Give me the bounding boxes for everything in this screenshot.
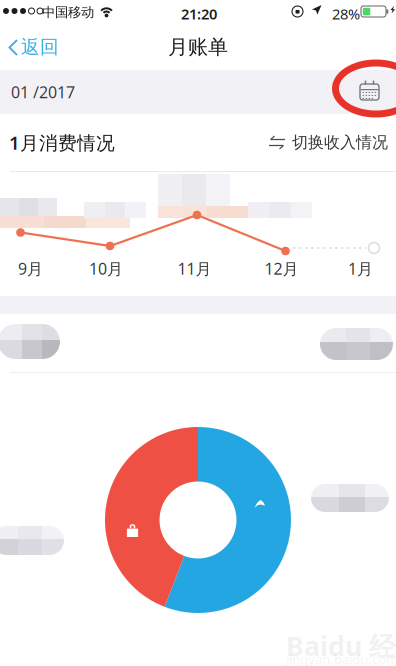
staticText: 01 /2017 [11, 81, 75, 103]
button[interactable]: 返回 [0, 28, 69, 66]
staticText: 中国移动 [42, 4, 94, 20]
staticText: 1月消费情况 [9, 130, 115, 155]
button[interactable]: Choose month [352, 72, 386, 112]
staticText: jingyan.baidu.com [286, 650, 396, 666]
staticText: 月账单 [168, 35, 228, 59]
staticText: 9月 [18, 258, 43, 279]
staticText: 21:20 [181, 4, 217, 23]
staticText: 切换收入情况 [292, 133, 388, 152]
staticText: 1月 [348, 258, 373, 279]
staticText: 28% [332, 4, 360, 23]
staticText: 返回 [21, 35, 59, 58]
staticText: 12月 [264, 258, 298, 279]
staticText: Baidu 经验 [286, 628, 396, 664]
staticText: 10月 [89, 258, 123, 279]
button[interactable]: 切换收入情况 [269, 125, 388, 160]
staticText: 11月 [177, 258, 211, 279]
